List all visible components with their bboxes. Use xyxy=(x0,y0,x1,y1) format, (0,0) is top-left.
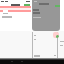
button[interactable]: App icon xyxy=(53,32,59,38)
button[interactable] xyxy=(0,3,31,6)
